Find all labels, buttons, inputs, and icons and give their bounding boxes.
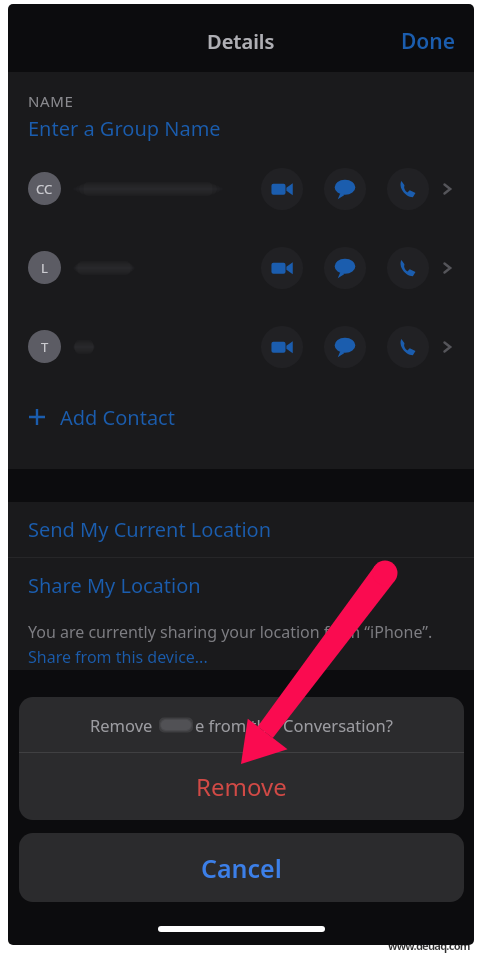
button[interactable]: Message [324,247,366,289]
button[interactable]: Enter a Group Name [28,115,221,142]
button[interactable]: Video call [261,247,303,289]
button[interactable]: Message [324,326,366,368]
button[interactable]: Message [324,168,366,210]
button[interactable]: CC [8,149,474,228]
staticText: Remove [196,770,287,803]
staticText: Send My Current Location [28,516,272,543]
button[interactable]: Share from this device... [28,646,208,668]
button[interactable]: Cancel [19,833,464,902]
button[interactable]: Done [383,17,474,66]
button[interactable]: Remove [19,753,464,820]
button[interactable]: Call [387,326,429,368]
staticText: Add Contact [60,404,175,431]
staticText: T [41,338,49,356]
button[interactable]: L [8,228,474,307]
staticText: Cancel [201,851,282,885]
staticText: CC [36,180,53,198]
staticText: e from this Conversation? [195,714,393,736]
button[interactable]: T [8,307,474,386]
button[interactable]: Share My Location [8,558,474,612]
staticText: www.deuaq.com [388,938,470,953]
staticText: Remove [90,714,157,736]
button[interactable]: Call [387,247,429,289]
staticText: Details [207,28,275,55]
button[interactable]: Add Contact [8,386,474,448]
staticText: Share My Location [28,572,201,599]
button[interactable]: Video call [261,168,303,210]
button[interactable]: Video call [261,326,303,368]
staticText: You are currently sharing your location … [28,621,433,643]
button[interactable]: Send My Current Location [8,502,474,557]
staticText: Done [401,27,456,56]
staticText: NAME [28,91,74,111]
staticText: L [41,259,48,277]
button[interactable]: Call [387,168,429,210]
